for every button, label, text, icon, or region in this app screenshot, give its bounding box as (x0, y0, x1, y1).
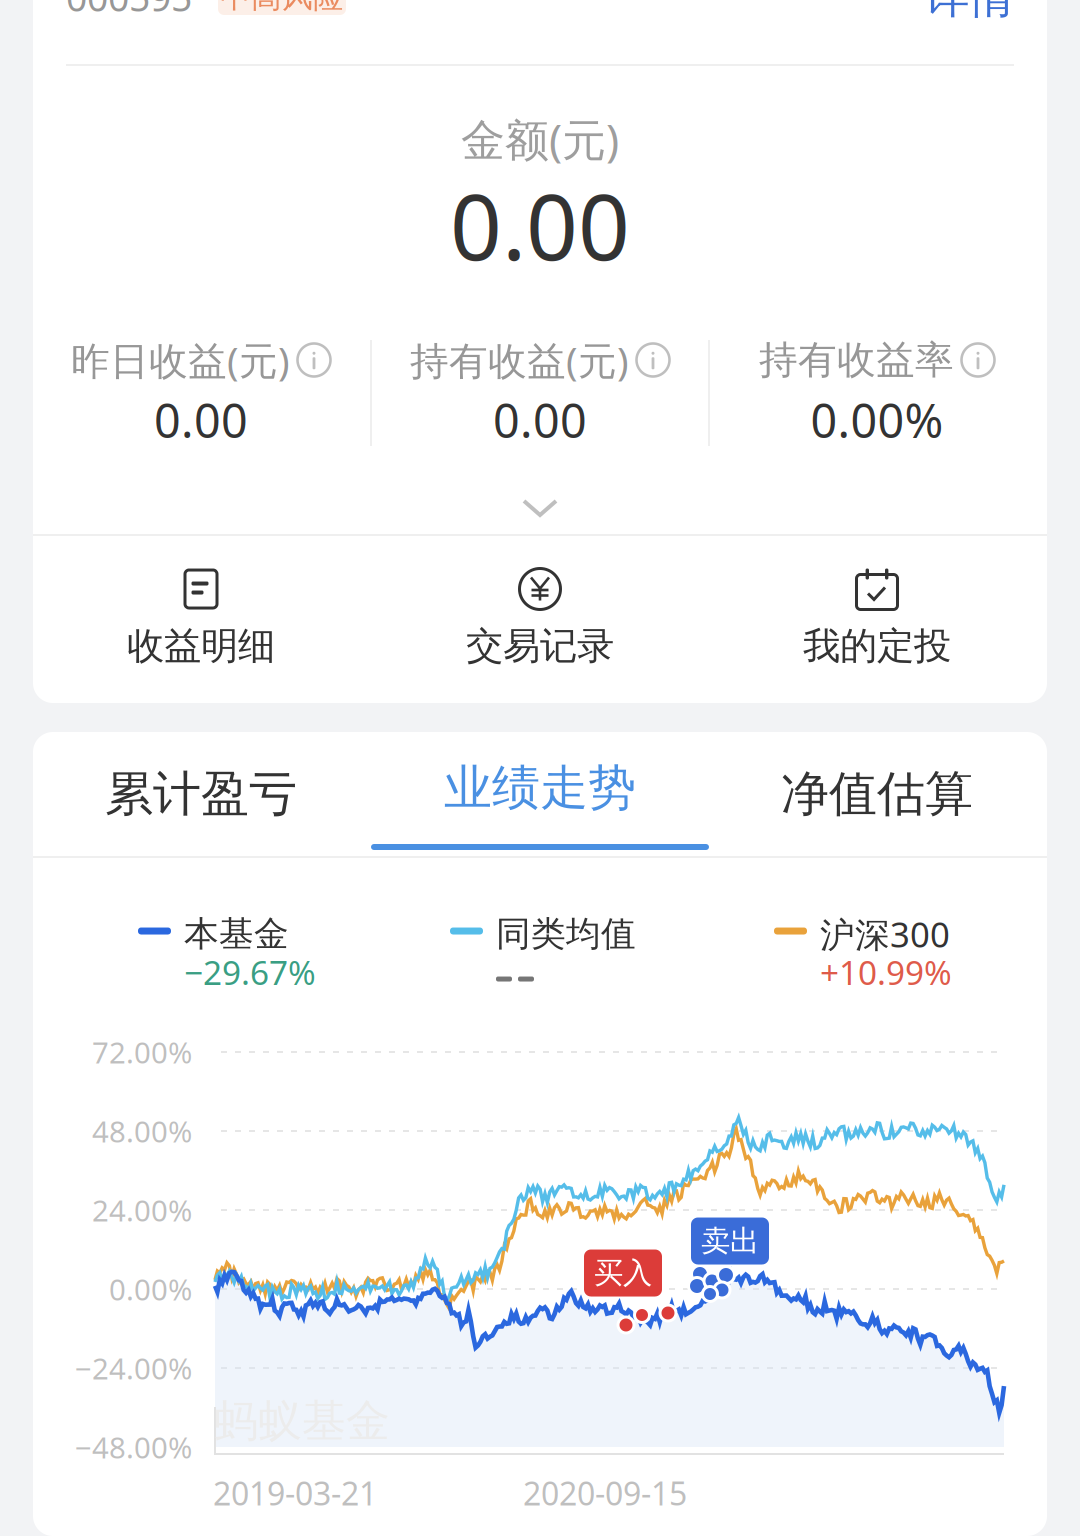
staticText: 金额(元) (461, 110, 619, 168)
staticText: 业绩走势 (444, 758, 636, 817)
staticText: 0.00 (493, 389, 587, 451)
button[interactable]: 业绩走势 (371, 732, 709, 856)
staticText: −24.00% (75, 1348, 192, 1387)
staticText: +10.99% (820, 950, 952, 994)
staticText: 昨日收益(元) (71, 334, 290, 386)
staticText: 买入 (594, 1255, 652, 1291)
staticText: 收益明细 (127, 623, 275, 669)
staticText: 交易记录 (466, 623, 614, 669)
staticText: 本基金 (184, 913, 289, 955)
staticText: 沪深300 (820, 911, 950, 957)
button[interactable]: 收益明细 (32, 531, 370, 697)
staticText: 0.00% (810, 389, 943, 451)
staticText: 0.00% (109, 1269, 192, 1308)
staticText: 同类均值 (496, 913, 636, 955)
staticText: 持有收益率 (759, 336, 954, 384)
staticText: 蚂蚁基金 (214, 1394, 390, 1448)
button[interactable]: 我的定投 (708, 531, 1046, 697)
staticText: 0.00 (154, 389, 248, 451)
button[interactable]: 展开 (480, 480, 600, 536)
staticText: 2019-03-21 (213, 1472, 377, 1514)
staticText: 详情 (924, 0, 1014, 25)
staticText: 2020-09-15 (523, 1472, 687, 1514)
staticText: −48.00% (75, 1427, 192, 1466)
staticText: 中高风险 (220, 0, 344, 16)
staticText: 我的定投 (803, 623, 951, 669)
button[interactable]: 净值估算 (708, 732, 1046, 856)
staticText: 0.00 (450, 165, 630, 285)
staticText: 000595 (66, 0, 192, 22)
staticText: −29.67% (184, 950, 316, 994)
staticText: 48.00% (92, 1111, 192, 1150)
button[interactable]: 交易记录 (371, 531, 709, 697)
staticText: 持有收益(元) (410, 334, 629, 386)
staticText: 卖出 (701, 1223, 759, 1259)
staticText: 24.00% (92, 1190, 192, 1229)
staticText: 净值估算 (781, 764, 973, 823)
staticText: 72.00% (92, 1032, 192, 1071)
staticText: 累计盈亏 (105, 764, 297, 823)
button[interactable]: 累计盈亏 (32, 732, 370, 856)
